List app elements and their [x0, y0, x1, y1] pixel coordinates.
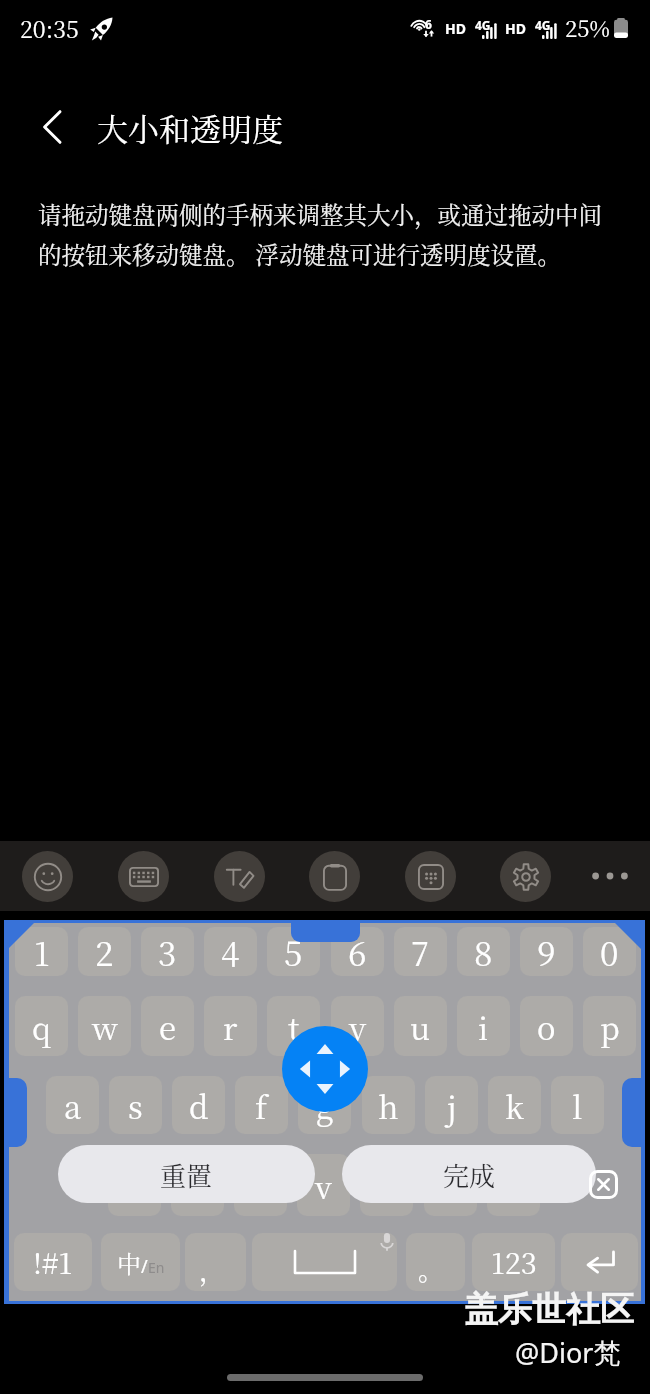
staticText: u	[410, 1004, 431, 1049]
button[interactable]: 123	[472, 1233, 555, 1291]
button[interactable]: !#1	[14, 1233, 92, 1291]
button[interactable]: f	[235, 1076, 288, 1134]
button[interactable]: l	[551, 1076, 604, 1134]
button[interactable]: 2	[78, 927, 131, 976]
staticText: n	[440, 1163, 461, 1208]
staticText: f	[255, 1083, 268, 1128]
staticText: 中	[117, 1245, 141, 1279]
button[interactable]: Back	[24, 99, 80, 155]
button[interactable]: Emoji	[22, 851, 73, 902]
staticText: b	[377, 1163, 397, 1208]
button[interactable]	[561, 1233, 638, 1291]
button[interactable]: v	[297, 1154, 350, 1216]
button[interactable]: g	[298, 1076, 351, 1134]
button[interactable]: x	[171, 1154, 224, 1216]
staticText: z	[127, 1163, 143, 1208]
button[interactable]: 。	[406, 1233, 465, 1291]
button[interactable]: i	[457, 996, 510, 1056]
button[interactable]: q	[15, 996, 68, 1056]
staticText: t	[288, 1004, 300, 1049]
button[interactable]: h	[362, 1076, 415, 1134]
staticText: 2	[95, 928, 114, 975]
staticText: v	[315, 1163, 332, 1208]
button[interactable]: o	[520, 996, 573, 1056]
button[interactable]: 0	[583, 927, 636, 976]
button[interactable]: 重置	[58, 1145, 315, 1203]
staticText: /	[141, 1254, 148, 1279]
staticText: d	[189, 1083, 209, 1128]
button[interactable]: Settings	[500, 851, 551, 902]
button[interactable]: s	[109, 1076, 162, 1134]
staticText: 盖乐世社区	[464, 1288, 634, 1331]
button[interactable]: c	[234, 1154, 287, 1216]
button[interactable]: Move keyboard	[291, 920, 360, 942]
button[interactable]: e	[141, 996, 194, 1056]
staticText: 完成	[443, 1156, 496, 1193]
button[interactable]: Handwriting	[214, 851, 265, 902]
button[interactable]: j	[425, 1076, 478, 1134]
staticText: 大小和透明度	[97, 105, 283, 150]
button[interactable]: Keyboard	[118, 851, 169, 902]
staticText: 4G	[535, 17, 551, 33]
button[interactable]: t	[267, 996, 320, 1056]
button[interactable]: 5	[267, 927, 320, 976]
staticText: !#1	[33, 1241, 73, 1283]
button[interactable]: Clipboard	[309, 851, 360, 902]
button[interactable]: Move keyboard	[282, 1026, 368, 1112]
staticText: 请拖动键盘两侧的手柄来调整其大小，或通过拖动中间 的按钮来移动键盘。 浮动键盘可…	[38, 197, 602, 271]
staticText: x	[189, 1163, 207, 1208]
staticText: p	[600, 1004, 620, 1049]
button[interactable]: 中	[101, 1233, 180, 1291]
button[interactable]: Resize keyboard from right	[622, 1078, 645, 1147]
staticText: k	[505, 1083, 524, 1128]
button[interactable]: Close	[589, 1170, 618, 1199]
staticText: 3	[158, 928, 177, 975]
staticText: q	[32, 1004, 51, 1049]
staticText: w	[92, 1004, 118, 1049]
button[interactable]: Number pad	[405, 851, 456, 902]
button[interactable]: w	[78, 996, 131, 1056]
button[interactable]: d	[172, 1076, 225, 1134]
staticText: En	[148, 1258, 165, 1277]
button[interactable]: Resize keyboard from left	[4, 1078, 27, 1147]
button[interactable]: 9	[520, 927, 573, 976]
staticText: 0	[600, 928, 619, 975]
staticText: ，	[199, 1251, 226, 1288]
staticText: @Dior梵	[515, 1334, 621, 1371]
button[interactable]: b	[360, 1154, 413, 1216]
staticText: a	[64, 1083, 82, 1128]
button[interactable]: 7	[394, 927, 447, 976]
staticText: 5	[284, 928, 303, 975]
staticText: HD	[445, 19, 466, 38]
staticText: 123	[491, 1241, 537, 1283]
button[interactable]	[252, 1233, 397, 1291]
staticText: 20:35	[20, 12, 79, 45]
button[interactable]: k	[488, 1076, 541, 1134]
staticText: 9	[537, 928, 556, 975]
button[interactable]: n	[424, 1154, 477, 1216]
button[interactable]: 1	[15, 927, 68, 976]
button[interactable]: a	[46, 1076, 99, 1134]
button[interactable]: 完成	[342, 1145, 596, 1203]
staticText: 重置	[160, 1156, 213, 1193]
button[interactable]: More options	[585, 851, 635, 901]
button[interactable]: u	[394, 996, 447, 1056]
staticText: 4G	[475, 17, 491, 33]
button[interactable]: ，	[185, 1233, 246, 1291]
button[interactable]: 6	[331, 927, 384, 976]
staticText: h	[378, 1083, 399, 1128]
button[interactable]: r	[204, 996, 257, 1056]
button[interactable]: 8	[457, 927, 510, 976]
button[interactable]: z	[108, 1154, 161, 1216]
staticText: HD	[505, 19, 526, 38]
button[interactable]: 3	[141, 927, 194, 976]
button[interactable]: y	[331, 996, 384, 1056]
staticText: e	[159, 1004, 176, 1049]
button[interactable]: m	[487, 1154, 540, 1216]
button[interactable]: 4	[204, 927, 257, 976]
staticText: y	[349, 1004, 367, 1049]
staticText: i	[478, 1004, 489, 1049]
staticText: 1	[34, 928, 50, 975]
button[interactable]: p	[583, 996, 636, 1056]
staticText: l	[572, 1083, 583, 1128]
